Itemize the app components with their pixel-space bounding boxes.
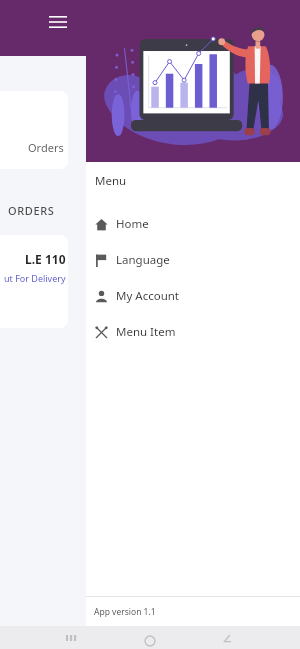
staticText: Orders (28, 140, 64, 155)
staticText: ORDERS (8, 203, 55, 218)
button[interactable]: Open navigation menu (44, 8, 72, 36)
staticText: My Account (116, 288, 179, 304)
staticText: App version 1.1 (94, 606, 156, 618)
staticText: Home (116, 216, 149, 232)
staticText: L.E 110 (25, 251, 66, 267)
staticText: Language (116, 252, 170, 268)
staticText: Menu Item (116, 324, 176, 340)
button[interactable]: Language (86, 242, 300, 278)
button[interactable]: Home (86, 206, 300, 242)
staticText: Menu (95, 173, 127, 189)
button[interactable]: Menu Item (86, 314, 300, 350)
button[interactable]: My Account (86, 278, 300, 314)
staticText: ut For Delivery (4, 272, 66, 284)
